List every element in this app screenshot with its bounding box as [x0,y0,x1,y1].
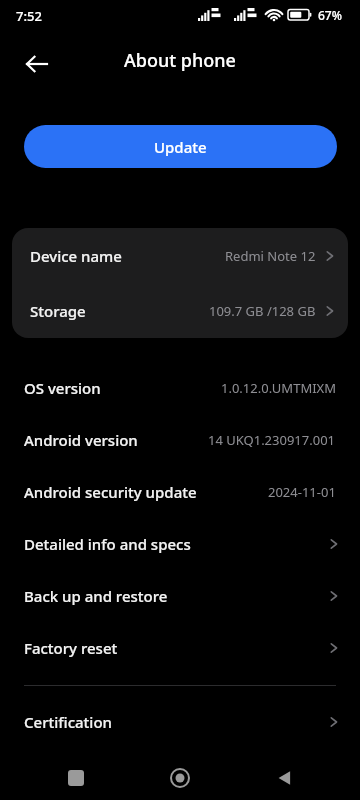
staticText: Android version [24,430,138,450]
staticText: 109.7 GB /128 GB [209,302,316,320]
button[interactable]: Factory reset [0,622,360,674]
staticText: 67% [318,7,342,23]
staticText: Android security update [24,482,197,502]
button[interactable]: OS version [0,362,360,414]
button[interactable]: Back [14,41,60,87]
button[interactable]: Back up and restore [0,570,360,622]
button[interactable]: Device name [12,228,348,283]
staticText: Redmi Note 12 [225,247,316,265]
staticText: Device name [30,246,122,266]
button[interactable]: Update [24,125,337,168]
button[interactable]: Back [256,756,314,800]
button[interactable]: Recents [47,756,105,800]
staticText: Update [154,137,207,157]
staticText: 1.0.12.0.UMTMIXM [221,379,336,397]
button[interactable]: Android security update [0,466,360,518]
button[interactable]: Storage [12,283,348,338]
button[interactable]: Detailed info and specs [0,518,360,570]
staticText: Detailed info and specs [24,534,191,554]
staticText: Certification [24,712,112,732]
button[interactable]: Home [151,756,209,800]
button[interactable]: Certification [0,696,360,748]
staticText: Storage [30,301,86,321]
staticText: Back up and restore [24,586,168,606]
button[interactable]: Android version [0,414,360,466]
staticText: Factory reset [24,638,118,658]
staticText: 14 UKQ1.230917.001 [208,431,336,449]
staticText: 2024-11-01 [268,483,336,501]
staticText: OS version [24,378,101,398]
staticText: About phone [0,48,360,73]
staticText: 7:52 [16,7,42,25]
